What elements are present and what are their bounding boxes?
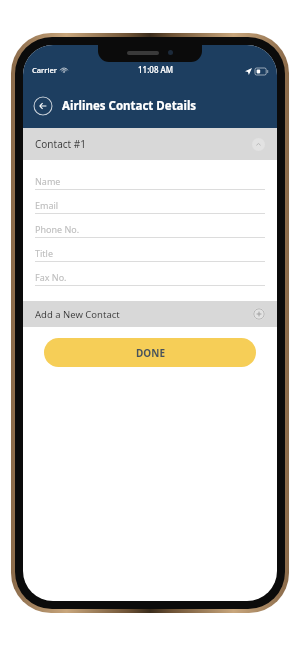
staticText: Fax No.	[35, 271, 67, 283]
button[interactable]: Back	[33, 96, 53, 116]
staticText: Email	[35, 199, 59, 211]
other: Add contact	[253, 308, 265, 320]
button[interactable]: Name	[35, 172, 265, 189]
staticText: 11:08 AM	[138, 64, 174, 75]
button[interactable]: Email	[35, 196, 265, 213]
staticText: DONE	[136, 346, 165, 360]
staticText: Carrier	[32, 65, 57, 75]
staticText: Name	[35, 175, 61, 187]
other: Collapse	[252, 138, 265, 151]
button[interactable]: Add a New Contact	[23, 301, 277, 327]
staticText: Phone No.	[35, 223, 80, 235]
button[interactable]: Title	[35, 244, 265, 261]
button[interactable]: Contact #1	[23, 128, 277, 160]
staticText: Airlines Contact Details	[62, 98, 197, 114]
button[interactable]: DONE	[44, 338, 256, 367]
button[interactable]: Fax No.	[35, 268, 265, 285]
staticText: Contact #1	[35, 137, 86, 151]
button[interactable]: Phone No.	[35, 220, 265, 237]
staticText: Add a New Contact	[35, 308, 120, 321]
staticText: Title	[35, 247, 53, 259]
